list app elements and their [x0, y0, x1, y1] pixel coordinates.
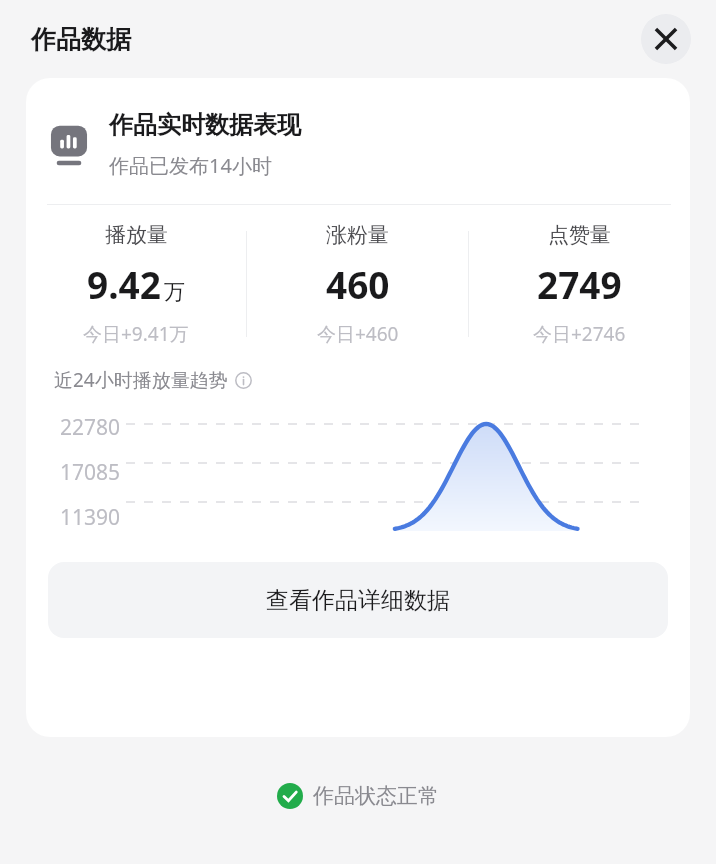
staticText: 22780 — [60, 413, 121, 442]
staticText: 播放量 — [105, 222, 168, 248]
staticText: 作品实时数据表现 — [109, 110, 301, 140]
staticText: 点赞量 — [548, 222, 611, 248]
staticText: 460 — [326, 259, 390, 309]
button[interactable]: Close — [641, 14, 691, 64]
staticText: 近24小时播放量趋势 — [54, 367, 228, 393]
staticText: 作品已发布14小时 — [109, 152, 272, 179]
staticText: 今日+460 — [317, 321, 399, 347]
staticText: 作品状态正常 — [313, 783, 439, 809]
staticText: 9.42 — [87, 259, 161, 309]
staticText: 涨粉量 — [326, 222, 389, 248]
staticText: 作品数据 — [31, 24, 131, 55]
button[interactable]: 查看作品详细数据 — [48, 562, 668, 638]
staticText: 今日+9.41万 — [83, 321, 189, 347]
staticText: 17085 — [60, 458, 121, 487]
button[interactable]: 播放量 — [26, 222, 246, 347]
staticText: 2749 — [537, 259, 622, 309]
button[interactable]: 点赞量 — [469, 222, 690, 347]
button[interactable]: 涨粉量 — [247, 222, 468, 347]
staticText: 万 — [164, 279, 185, 305]
staticText: 今日+2746 — [533, 321, 626, 347]
staticText: 查看作品详细数据 — [266, 586, 450, 615]
staticText: 11390 — [60, 503, 121, 532]
